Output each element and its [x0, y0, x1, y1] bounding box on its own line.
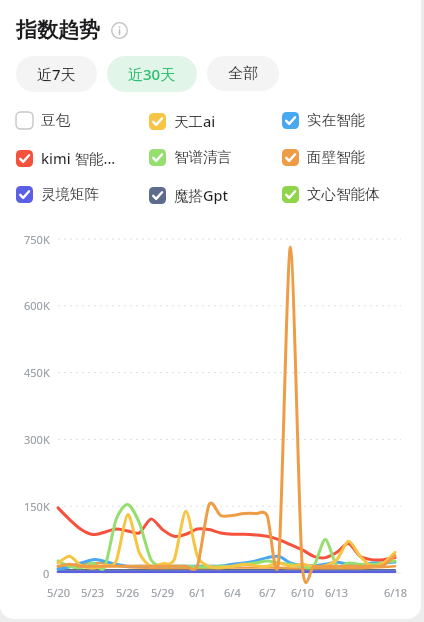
staticText: 面壁智能: [307, 148, 365, 166]
button[interactable]: 实在智能: [282, 111, 415, 129]
staticText: 指数趋势: [16, 17, 100, 43]
staticText: 近7天: [37, 64, 76, 84]
staticText: 300K: [24, 432, 50, 447]
staticText: 近30天: [128, 64, 176, 84]
staticText: 智谱清言: [174, 148, 232, 166]
staticText: kimi 智能...: [41, 148, 116, 168]
staticText: 6/7: [259, 585, 276, 600]
staticText: 5/29: [151, 585, 174, 600]
staticText: 豆包: [41, 111, 70, 129]
staticText: 150K: [24, 499, 50, 514]
staticText: 600K: [24, 298, 50, 313]
button[interactable]: 面壁智能: [282, 148, 415, 166]
staticText: 6/13: [325, 585, 348, 600]
button[interactable]: 豆包: [16, 111, 149, 129]
staticText: 天工ai: [174, 111, 216, 131]
staticText: 0: [43, 566, 50, 581]
staticText: 5/23: [81, 585, 104, 600]
button[interactable]: 说明: [109, 20, 129, 40]
button[interactable]: 近7天: [16, 56, 97, 92]
button[interactable]: 文心智能体: [282, 185, 415, 203]
staticText: 6/18: [384, 585, 407, 600]
button[interactable]: 灵境矩阵: [16, 185, 149, 203]
staticText: 750K: [24, 232, 50, 247]
staticText: 6/1: [189, 585, 206, 600]
staticText: 灵境矩阵: [41, 185, 99, 203]
staticText: 5/26: [116, 585, 139, 600]
button[interactable]: 近30天: [107, 56, 197, 92]
button[interactable]: kimi 智能...: [16, 148, 149, 168]
staticText: 全部: [228, 64, 258, 83]
staticText: 文心智能体: [307, 185, 380, 203]
staticText: 魔搭Gpt: [174, 185, 229, 205]
staticText: 实在智能: [307, 111, 365, 129]
button[interactable]: 天工ai: [149, 111, 282, 131]
staticText: 6/4: [224, 585, 241, 600]
button[interactable]: 全部: [207, 56, 279, 91]
button[interactable]: 魔搭Gpt: [149, 185, 282, 205]
staticText: 5/20: [47, 585, 70, 600]
button[interactable]: 智谱清言: [149, 148, 282, 166]
staticText: 450K: [24, 365, 50, 380]
staticText: 6/10: [291, 585, 314, 600]
